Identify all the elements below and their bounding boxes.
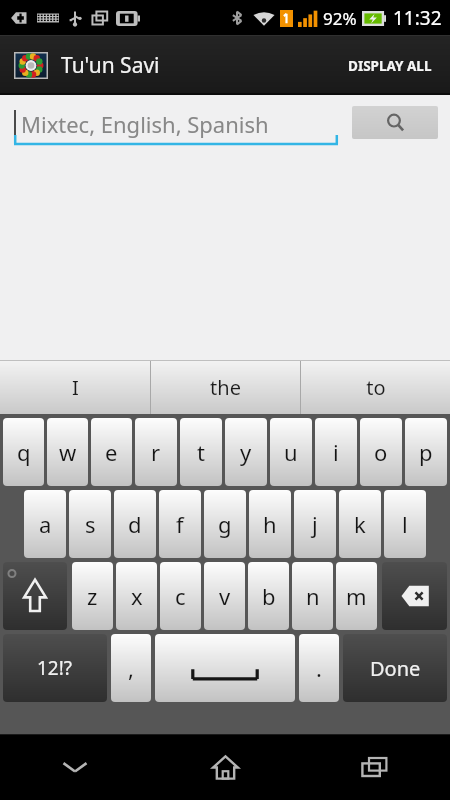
- button[interactable]: Recent apps: [344, 736, 406, 798]
- staticText: Mixtec, English, Spanish: [21, 109, 269, 139]
- staticText: w: [59, 437, 77, 467]
- button[interactable]: j: [294, 490, 336, 558]
- button[interactable]: Mixtec, English, Spanish: [14, 103, 338, 147]
- button[interactable]: DISPLAY ALL: [344, 49, 436, 83]
- staticText: Done: [370, 655, 421, 682]
- button[interactable]: y: [225, 418, 267, 486]
- staticText: j: [312, 509, 318, 539]
- button[interactable]: s: [69, 490, 111, 558]
- staticText: y: [240, 437, 252, 467]
- button[interactable]: the: [151, 360, 300, 414]
- staticText: u: [284, 437, 298, 467]
- button[interactable]: Home: [194, 736, 256, 798]
- staticText: e: [105, 437, 118, 467]
- staticText: Tu'un Savi: [61, 51, 160, 80]
- staticText: a: [39, 509, 52, 539]
- staticText: to: [366, 374, 386, 401]
- staticText: DISPLAY ALL: [348, 57, 432, 75]
- staticText: q: [17, 437, 31, 467]
- button[interactable]: q: [3, 418, 44, 486]
- staticText: I: [72, 374, 79, 401]
- button[interactable]: e: [91, 418, 132, 486]
- button[interactable]: [155, 634, 295, 702]
- button[interactable]: k: [339, 490, 381, 558]
- button[interactable]: Shift: [3, 562, 67, 630]
- staticText: i: [333, 437, 339, 467]
- staticText: 92%: [323, 7, 357, 30]
- button[interactable]: ,: [111, 634, 151, 702]
- staticText: p: [419, 437, 433, 467]
- staticText: v: [219, 581, 231, 611]
- button[interactable]: Hide keyboard: [44, 736, 106, 798]
- staticText: h: [263, 509, 277, 539]
- button[interactable]: p: [405, 418, 447, 486]
- staticText: 12!?: [37, 655, 73, 681]
- button[interactable]: b: [248, 562, 289, 630]
- staticText: r: [151, 437, 161, 467]
- button[interactable]: g: [204, 490, 246, 558]
- button[interactable]: d: [114, 490, 156, 558]
- staticText: ,: [128, 653, 134, 683]
- button[interactable]: .: [299, 634, 339, 702]
- button[interactable]: 12!?: [3, 634, 107, 702]
- button[interactable]: m: [336, 562, 377, 630]
- button[interactable]: I: [0, 360, 150, 414]
- button[interactable]: t: [180, 418, 222, 486]
- button[interactable]: v: [204, 562, 245, 630]
- staticText: t: [197, 437, 205, 467]
- button[interactable]: c: [160, 562, 201, 630]
- button[interactable]: a: [24, 490, 66, 558]
- button[interactable]: Search: [352, 106, 438, 139]
- staticText: m: [346, 581, 367, 611]
- button[interactable]: u: [270, 418, 312, 486]
- button[interactable]: Backspace: [382, 562, 447, 630]
- button[interactable]: o: [360, 418, 402, 486]
- staticText: z: [87, 581, 98, 611]
- button[interactable]: f: [159, 490, 201, 558]
- button[interactable]: h: [249, 490, 291, 558]
- button[interactable]: x: [116, 562, 157, 630]
- button[interactable]: Done: [343, 634, 447, 702]
- staticText: b: [262, 581, 276, 611]
- button[interactable]: to: [301, 360, 450, 414]
- button[interactable]: z: [72, 562, 113, 630]
- staticText: n: [306, 581, 320, 611]
- staticText: s: [85, 509, 96, 539]
- button[interactable]: w: [47, 418, 88, 486]
- staticText: d: [128, 509, 142, 539]
- staticText: c: [175, 581, 186, 611]
- button[interactable]: i: [315, 418, 357, 486]
- button[interactable]: n: [292, 562, 333, 630]
- button[interactable]: l: [384, 490, 426, 558]
- staticText: .: [316, 653, 322, 683]
- staticText: o: [374, 437, 388, 467]
- staticText: x: [131, 581, 143, 611]
- staticText: the: [210, 374, 241, 401]
- staticText: f: [176, 509, 184, 539]
- staticText: g: [218, 509, 232, 539]
- button[interactable]: r: [135, 418, 177, 486]
- staticText: 11:32: [393, 5, 442, 31]
- staticText: l: [402, 509, 408, 539]
- staticText: k: [354, 509, 366, 539]
